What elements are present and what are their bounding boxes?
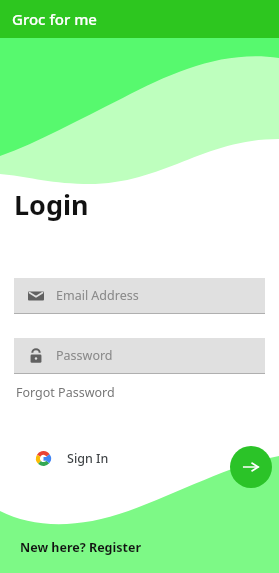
staticText: Forgot Password (16, 384, 115, 401)
staticText: Login (14, 186, 89, 223)
button[interactable]: Forgot Password (14, 382, 117, 403)
staticText: Email Address (56, 287, 139, 304)
staticText: Groc for me (12, 9, 97, 29)
staticText: Sign In (67, 450, 109, 467)
staticText: Password (56, 347, 113, 364)
staticText: New here? Register (20, 539, 141, 556)
button[interactable]: Password (14, 338, 265, 374)
button[interactable]: Email Address (14, 278, 265, 314)
button[interactable]: Continue (230, 446, 272, 488)
button[interactable]: New here? Register (14, 536, 147, 559)
button[interactable]: Sign In (22, 441, 123, 476)
